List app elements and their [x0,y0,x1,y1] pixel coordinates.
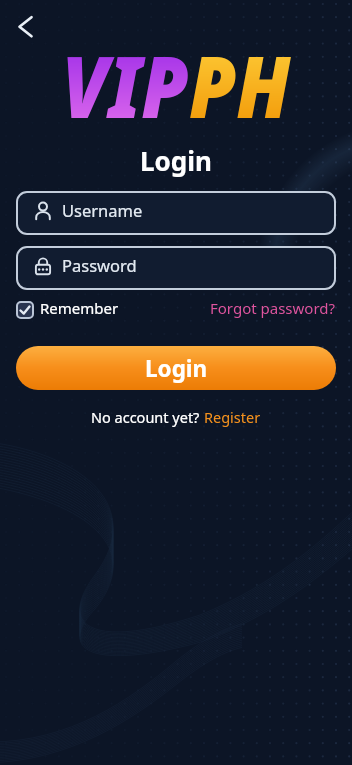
staticText: VIP [62,27,189,141]
staticText: PH [189,27,291,141]
staticText: Username [62,199,143,221]
staticText: Password [62,254,137,276]
button[interactable]: Remember [16,300,119,320]
staticText: Login [145,353,208,384]
staticText: Remember [40,298,119,318]
staticText: Login [0,143,352,178]
button[interactable]: Username [16,191,336,235]
button[interactable]: Register [204,407,261,427]
staticText: Register [204,407,261,427]
staticText: No account yet? [91,407,204,427]
button[interactable]: Forgot password? [210,300,336,320]
button[interactable] [12,13,40,41]
button[interactable]: Login [16,346,336,390]
button[interactable]: Password [16,246,336,290]
staticText: Forgot password? [210,298,336,318]
